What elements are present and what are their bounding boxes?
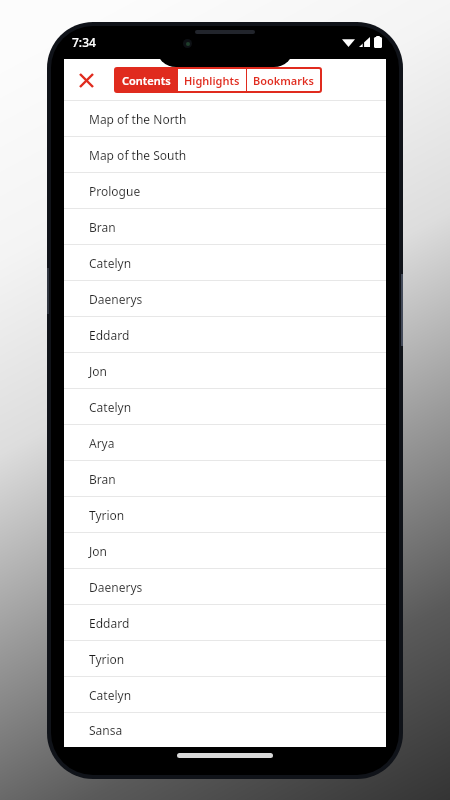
button[interactable]: Map of the South xyxy=(64,137,386,172)
button[interactable]: Catelyn xyxy=(64,245,386,280)
staticText: Arya xyxy=(89,435,115,451)
staticText: Catelyn xyxy=(89,687,132,703)
button[interactable]: Arya xyxy=(64,425,386,460)
staticText: Bookmarks xyxy=(253,73,314,88)
staticText: Bran xyxy=(89,219,116,235)
staticText: Tyrion xyxy=(89,651,125,667)
staticText: 7:34 xyxy=(72,34,96,50)
staticText: Prologue xyxy=(89,183,141,199)
button[interactable]: Daenerys xyxy=(64,569,386,604)
button[interactable]: Tyrion xyxy=(64,497,386,532)
button[interactable]: Prologue xyxy=(64,173,386,208)
button[interactable]: Map of the North xyxy=(64,101,386,136)
button[interactable]: Jon xyxy=(64,533,386,568)
staticText: Eddard xyxy=(89,327,130,343)
button[interactable]: Contents xyxy=(116,69,177,91)
staticText: Map of the South xyxy=(89,147,187,163)
staticText: Daenerys xyxy=(89,579,143,595)
button[interactable]: Bran xyxy=(64,461,386,496)
staticText: Map of the North xyxy=(89,111,187,127)
staticText: Tyrion xyxy=(89,507,125,523)
button[interactable]: Daenerys xyxy=(64,281,386,316)
button[interactable]: Catelyn xyxy=(64,389,386,424)
staticText: Jon xyxy=(89,543,107,559)
button[interactable]: Highlights xyxy=(178,69,246,91)
staticText: Sansa xyxy=(89,722,123,738)
button[interactable]: Eddard xyxy=(64,605,386,640)
staticText: Daenerys xyxy=(89,291,143,307)
staticText: Contents xyxy=(122,73,171,88)
button[interactable]: Close xyxy=(69,63,103,97)
staticText: Eddard xyxy=(89,615,130,631)
button[interactable]: Sansa xyxy=(64,713,386,747)
button[interactable]: Tyrion xyxy=(64,641,386,676)
button[interactable]: Catelyn xyxy=(64,677,386,712)
button[interactable]: Bookmarks xyxy=(247,69,320,91)
staticText: Bran xyxy=(89,471,116,487)
button[interactable]: Jon xyxy=(64,353,386,388)
staticText: Catelyn xyxy=(89,399,132,415)
staticText: Jon xyxy=(89,363,107,379)
button[interactable]: Bran xyxy=(64,209,386,244)
staticText: Catelyn xyxy=(89,255,132,271)
staticText: Highlights xyxy=(184,73,240,88)
button[interactable]: Eddard xyxy=(64,317,386,352)
